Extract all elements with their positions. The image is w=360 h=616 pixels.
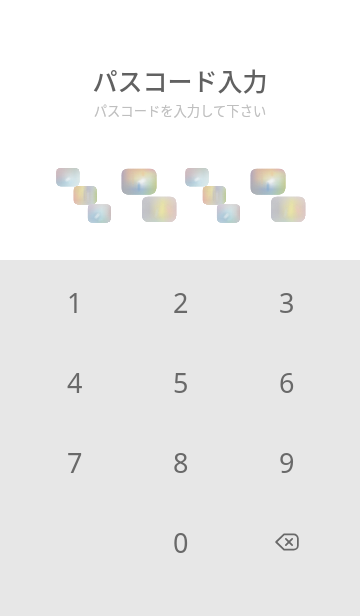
other: Delete [274,532,300,552]
button[interactable]: 3 [234,262,340,342]
staticText: 1 [67,284,83,321]
staticText: 0 [173,524,189,561]
button[interactable]: 2 [128,262,234,342]
button[interactable]: 4 [22,342,128,422]
staticText: パスコードを入力して下さい [0,101,360,120]
staticText: 9 [279,444,295,481]
staticText: 2 [173,284,189,321]
staticText: パスコード入力 [0,62,360,98]
staticText: 3 [279,284,295,321]
staticText: 5 [173,364,189,401]
button[interactable]: 5 [128,342,234,422]
button[interactable]: 0 [128,502,234,582]
staticText: 4 [67,364,83,401]
button[interactable]: 6 [234,342,340,422]
staticText: 8 [173,444,189,481]
button[interactable]: 8 [128,422,234,502]
button[interactable]: 9 [234,422,340,502]
button[interactable]: 7 [22,422,128,502]
button[interactable]: 1 [22,262,128,342]
staticText: 6 [279,364,295,401]
staticText: 7 [67,444,83,481]
button[interactable]: Delete [234,502,340,582]
